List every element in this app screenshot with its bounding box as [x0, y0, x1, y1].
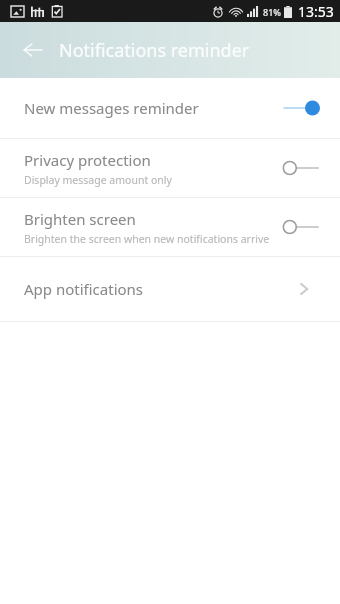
button[interactable]: Off — [276, 155, 322, 181]
staticText: Display message amount only — [24, 173, 172, 187]
button[interactable]: Brighten screen — [0, 198, 340, 256]
button[interactable]: App notifications — [286, 271, 322, 307]
button[interactable]: Privacy protection — [0, 139, 340, 197]
staticText: App notifications — [24, 279, 144, 299]
staticText: 81% — [263, 6, 281, 18]
staticText: Brighten screen — [24, 209, 136, 229]
staticText: Notifications reminder — [59, 38, 250, 63]
staticText: 13:53 — [298, 2, 334, 21]
staticText: Brighten the screen when new notificatio… — [24, 232, 270, 246]
button[interactable]: App notifications — [0, 257, 340, 321]
button[interactable]: New messages reminder — [0, 78, 340, 138]
button[interactable]: Off — [276, 214, 322, 240]
button[interactable]: On — [276, 95, 322, 121]
staticText: New messages reminder — [24, 98, 199, 118]
staticText: Privacy protection — [24, 150, 151, 170]
button[interactable]: Back — [14, 31, 52, 69]
